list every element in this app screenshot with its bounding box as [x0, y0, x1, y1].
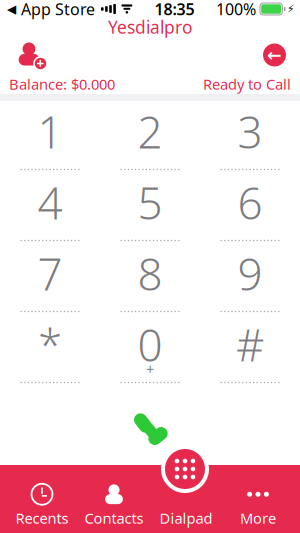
staticText: 6 — [237, 173, 262, 232]
staticText: + — [36, 55, 44, 72]
button[interactable]: Dialpad — [150, 481, 222, 529]
button[interactable]: Contacts — [78, 481, 150, 529]
staticText: App Store — [17, 0, 95, 20]
staticText: 4 — [37, 173, 62, 232]
staticText: # — [236, 315, 264, 374]
staticText: 100% — [216, 0, 256, 20]
button[interactable]: 1 — [0, 113, 100, 184]
staticText: * — [38, 315, 62, 374]
button[interactable]: Recents — [6, 481, 78, 529]
button[interactable]: Back — [257, 39, 292, 70]
button[interactable]: 0 — [100, 326, 200, 397]
button[interactable]: 2 — [100, 113, 200, 184]
button[interactable]: 6 — [200, 184, 300, 255]
button[interactable]: # — [200, 326, 300, 397]
staticText: Ready to Call — [203, 74, 291, 94]
staticText: ◀ — [7, 2, 16, 16]
button[interactable]: More — [222, 481, 294, 529]
button[interactable]: Add Contact — [8, 36, 54, 73]
staticText: 5 — [137, 173, 162, 232]
staticText: Dialpad — [159, 508, 212, 528]
staticText: 2 — [137, 102, 162, 161]
staticText: ⚡︎ — [287, 3, 294, 15]
button[interactable]: Call — [124, 403, 176, 455]
button[interactable]: 7 — [0, 255, 100, 326]
staticText: 1 — [37, 102, 62, 161]
button[interactable]: 3 — [200, 113, 300, 184]
staticText: 8 — [137, 244, 162, 303]
staticText: 9 — [237, 244, 262, 303]
button[interactable]: 4 — [0, 184, 100, 255]
button[interactable]: 9 — [200, 255, 300, 326]
staticText: More — [240, 508, 276, 528]
staticText: Recents — [15, 508, 68, 528]
staticText: 0 — [137, 315, 162, 374]
button[interactable]: 5 — [100, 184, 200, 255]
staticText: Contacts — [84, 508, 143, 528]
staticText: ← — [267, 45, 282, 65]
staticText: Balance: $0.000 — [9, 74, 115, 94]
staticText: 18:35 — [154, 0, 194, 20]
button[interactable]: * — [0, 326, 100, 397]
staticText: + — [146, 359, 154, 379]
staticText: 7 — [37, 244, 62, 303]
button[interactable]: Dialpad — [161, 445, 209, 493]
button[interactable]: 8 — [100, 255, 200, 326]
staticText: Yesdialpro — [108, 15, 192, 38]
staticText: 3 — [237, 102, 262, 161]
